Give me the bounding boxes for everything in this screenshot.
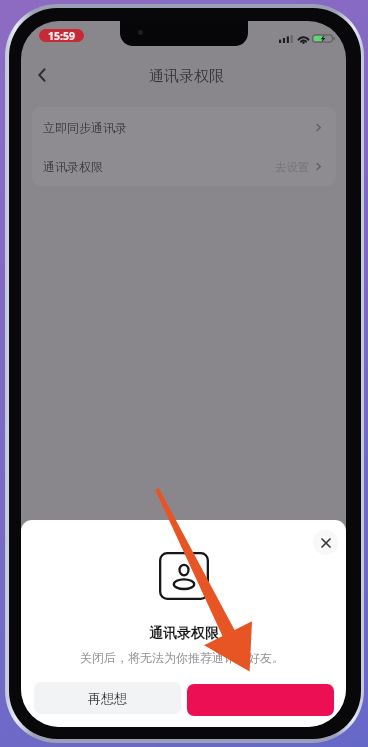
button[interactable]: 通讯录权限 (32, 147, 336, 186)
staticText: 通讯录权限 (43, 159, 103, 174)
staticText: 通讯录权限 (149, 625, 219, 643)
staticText: 再想想 (88, 690, 127, 706)
staticText: 立即同步通讯录 (43, 120, 127, 135)
staticText: 关闭后，将无法为你推荐通讯录好友。 (80, 650, 284, 665)
staticText: 15:59 (48, 29, 75, 42)
button[interactable]: Confirm (187, 684, 334, 716)
button[interactable]: 立即同步通讯录 (32, 107, 336, 147)
button[interactable]: Back (27, 60, 57, 90)
button[interactable]: Close (313, 530, 338, 555)
staticText: 去设置 (275, 160, 310, 174)
staticText: 通讯录权限 (149, 67, 224, 86)
button[interactable]: 再想想 (34, 682, 181, 714)
